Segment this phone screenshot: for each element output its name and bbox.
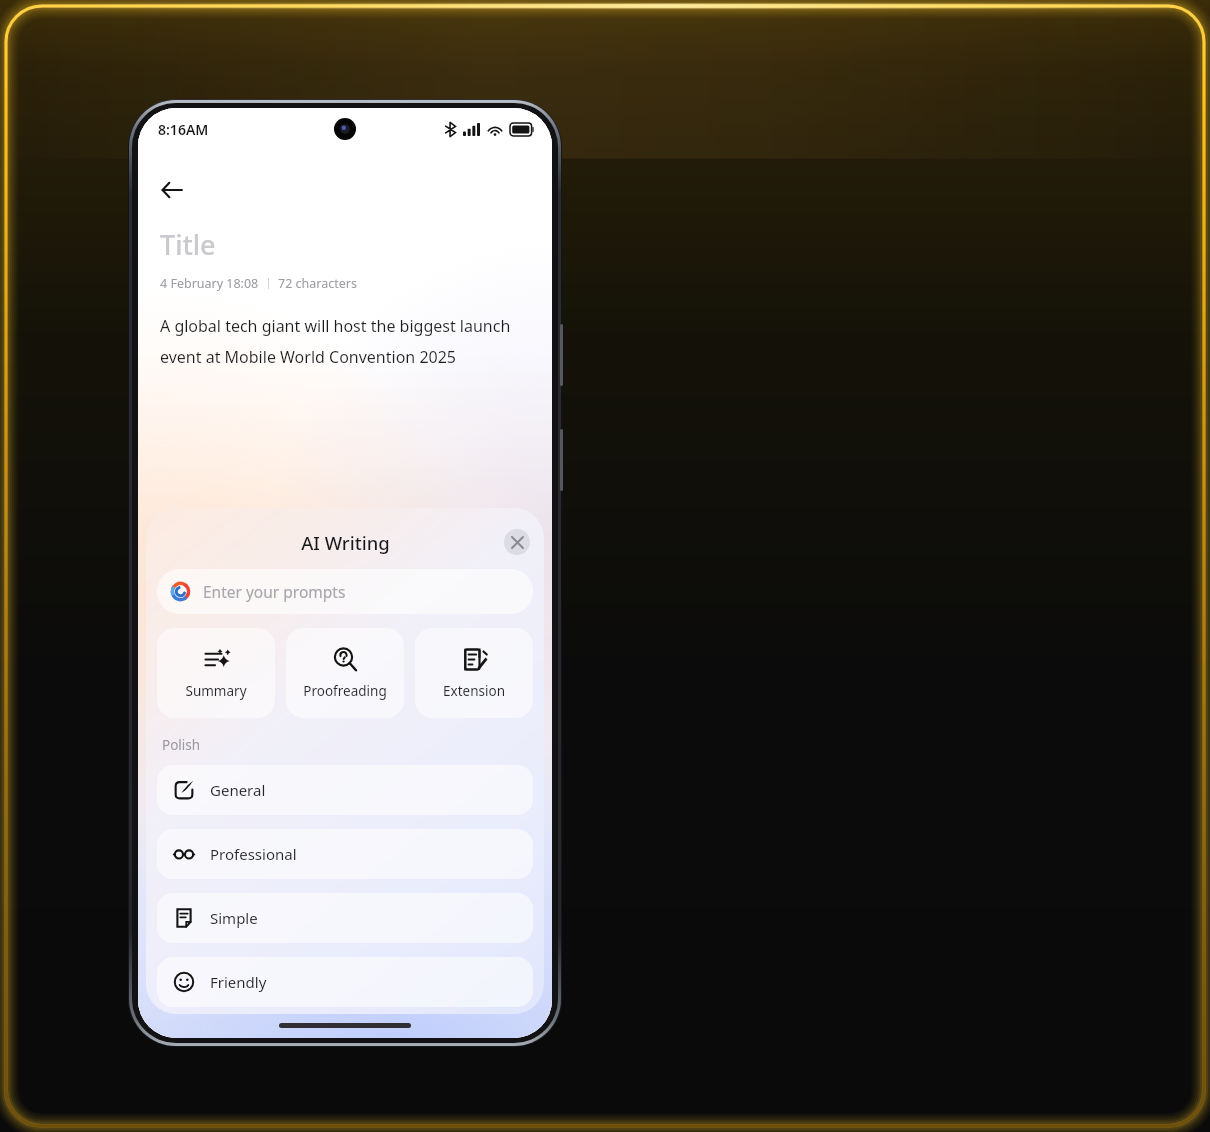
staticText: Enter your prompts: [203, 581, 346, 602]
staticText: Title: [160, 226, 216, 263]
button[interactable]: Back: [148, 166, 196, 214]
staticText: 8:16AM: [158, 120, 209, 139]
button[interactable]: Enter your prompts: [157, 569, 533, 614]
staticText: General: [210, 780, 266, 800]
staticText: 72 characters: [278, 275, 357, 292]
staticText: A global tech giant will host the bigges…: [160, 315, 530, 368]
button[interactable]: Close: [504, 529, 530, 555]
button[interactable]: General: [157, 765, 533, 815]
button[interactable]: Extension: [415, 628, 533, 718]
staticText: Simple: [210, 908, 258, 928]
staticText: Summary: [185, 682, 247, 700]
staticText: Proofreading: [303, 682, 387, 700]
staticText: Professional: [210, 844, 297, 864]
staticText: Friendly: [210, 972, 267, 992]
button[interactable]: Simple: [157, 893, 533, 943]
staticText: Extension: [443, 682, 505, 700]
button[interactable]: Proofreading: [286, 628, 404, 718]
button[interactable]: Friendly: [157, 957, 533, 1007]
staticText: 4 February 18:08: [160, 275, 259, 292]
button[interactable]: Professional: [157, 829, 533, 879]
button[interactable]: Summary: [157, 628, 275, 718]
staticText: AI Writing: [301, 530, 390, 555]
staticText: Polish: [162, 736, 201, 754]
